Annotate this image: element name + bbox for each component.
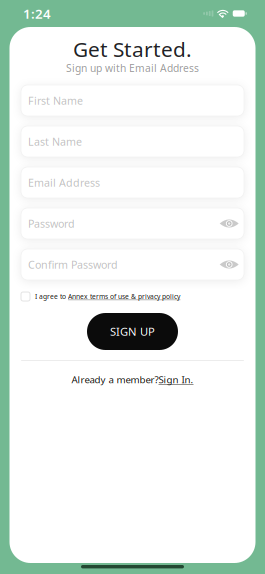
button[interactable]: Show Password — [219, 214, 239, 233]
staticText: Email Address — [28, 175, 100, 190]
staticText: First Name — [28, 93, 83, 108]
staticText: 1:24 — [23, 5, 51, 22]
staticText: Sign up with Email Address — [66, 61, 199, 75]
button[interactable]: Show Confirm Password — [219, 255, 239, 274]
button[interactable]: Already a member?Sign In. — [71, 373, 193, 386]
staticText: Already a member?Sign In. — [71, 373, 193, 386]
button[interactable]: SIGN UP — [87, 313, 178, 350]
staticText: Get Started. — [73, 35, 192, 63]
staticText: Last Name — [28, 134, 82, 149]
button[interactable]: I agree to Annex terms of use & privacy … — [21, 291, 244, 302]
staticText: Password — [28, 216, 75, 231]
staticText: SIGN UP — [110, 324, 155, 339]
staticText: I agree to Annex terms of use & privacy … — [35, 292, 180, 301]
staticText: Confirm Password — [28, 257, 118, 272]
